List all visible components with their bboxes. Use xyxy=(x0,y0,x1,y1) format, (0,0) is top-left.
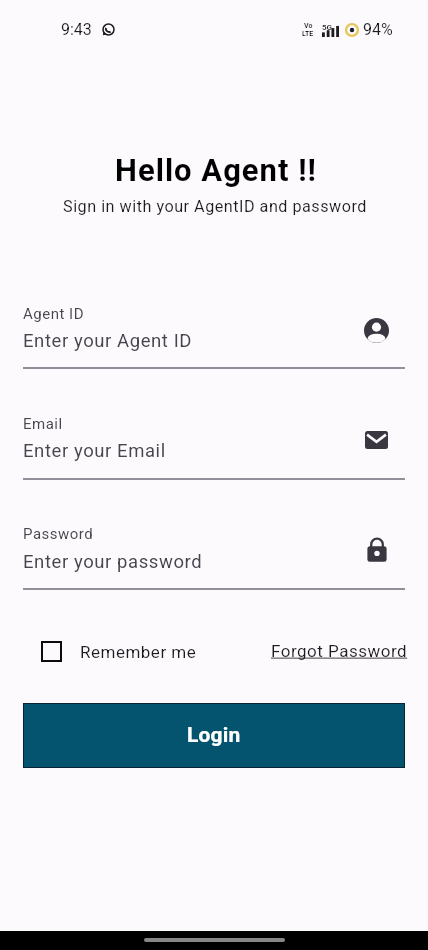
staticText: 9:43 xyxy=(61,20,92,39)
staticText: Sign in with your AgentID and password xyxy=(2,197,428,216)
staticText: 5G xyxy=(322,23,333,32)
staticText: Enter your password xyxy=(23,551,203,573)
staticText: 94% xyxy=(363,20,393,39)
staticText: Vo xyxy=(304,22,313,30)
button[interactable]: Remember me xyxy=(30,635,208,668)
staticText: Hello Agent !! xyxy=(4,152,428,188)
other: Email xyxy=(365,431,388,449)
other: Password xyxy=(367,537,387,562)
staticText: Enter your Agent ID xyxy=(23,330,192,352)
staticText: Email xyxy=(23,415,63,433)
staticText: Password xyxy=(23,525,94,543)
staticText: Enter your Email xyxy=(23,440,166,462)
button[interactable]: Login xyxy=(24,704,404,767)
other: Agent ID xyxy=(364,318,389,343)
staticText: Agent ID xyxy=(23,305,84,323)
other: WhatsApp xyxy=(102,23,115,36)
staticText: LTE xyxy=(302,30,314,38)
button[interactable]: Forgot Password xyxy=(271,641,428,661)
staticText: Login xyxy=(187,723,241,748)
staticText: Remember me xyxy=(80,642,197,662)
